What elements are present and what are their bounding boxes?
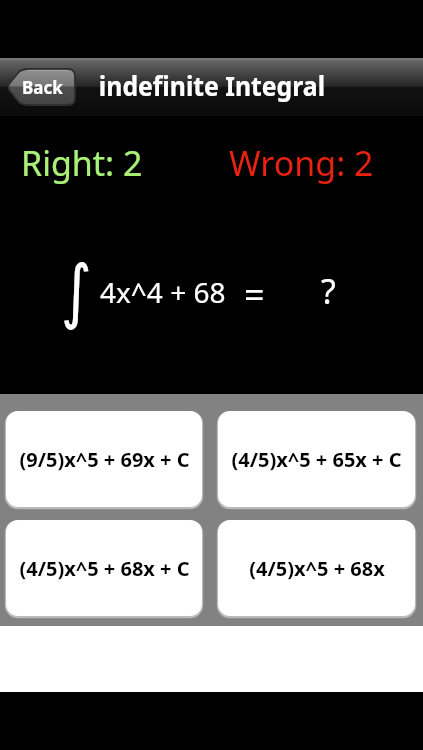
staticText: Back — [22, 76, 63, 99]
staticText: ∫ — [61, 250, 92, 331]
button[interactable]: Back — [6, 68, 75, 106]
button[interactable]: (4/5)x^5 + 65x + C — [218, 411, 415, 507]
staticText: indefinite Integral — [99, 68, 325, 104]
staticText: (4/5)x^5 + 68x — [249, 555, 385, 582]
button[interactable]: (4/5)x^5 + 68x + C — [6, 520, 202, 616]
button[interactable]: (4/5)x^5 + 68x — [218, 520, 415, 616]
staticText: (4/5)x^5 + 65x + C — [231, 446, 402, 473]
staticText: Right: 2 — [21, 140, 143, 186]
button[interactable]: (9/5)x^5 + 69x + C — [6, 411, 202, 507]
staticText: (4/5)x^5 + 68x + C — [19, 555, 190, 582]
staticText: (9/5)x^5 + 69x + C — [19, 446, 190, 473]
staticText: Wrong: 2 — [229, 140, 374, 186]
staticText: ? — [321, 268, 336, 314]
staticText: 4x^4 + 68 — [100, 273, 226, 311]
staticText: = — [244, 270, 265, 319]
